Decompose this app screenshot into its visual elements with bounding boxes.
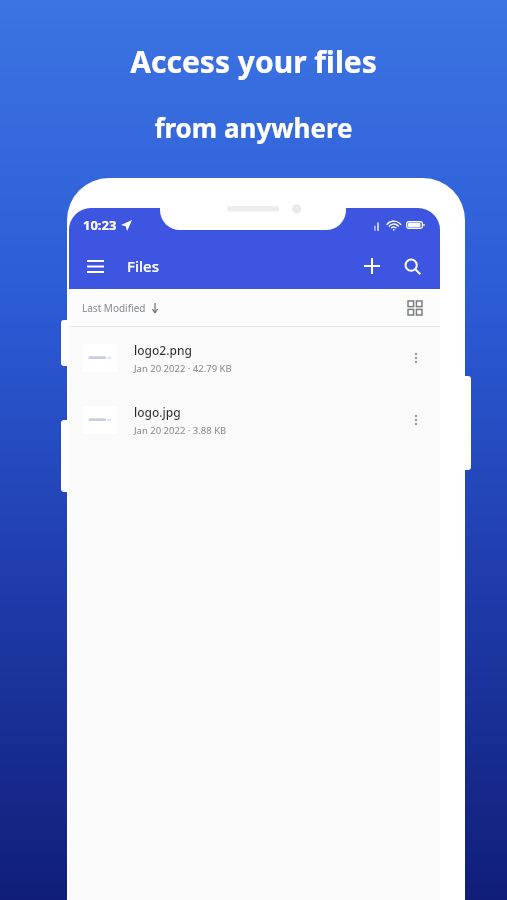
button[interactable]: More options bbox=[400, 342, 432, 374]
button[interactable]: logo2.png bbox=[69, 327, 440, 389]
button[interactable]: Search bbox=[392, 246, 432, 286]
button[interactable]: Menu bbox=[77, 248, 113, 284]
staticText: Files bbox=[127, 256, 159, 276]
button[interactable]: Grid view bbox=[400, 293, 430, 323]
staticText: Jan 20 2022 · 3.88 KB bbox=[134, 424, 227, 437]
staticText: from anywhere bbox=[0, 110, 507, 145]
staticText: 10:23 bbox=[83, 216, 117, 234]
staticText: Jan 20 2022 · 42.79 KB bbox=[134, 362, 232, 375]
button[interactable]: Add bbox=[352, 246, 392, 286]
staticText: logo2.png bbox=[134, 342, 192, 358]
button[interactable]: More options bbox=[400, 404, 432, 436]
staticText: Last Modified bbox=[82, 301, 146, 315]
staticText: Access your files bbox=[0, 41, 507, 82]
button[interactable]: logo.jpg bbox=[69, 389, 440, 451]
staticText: logo.jpg bbox=[134, 404, 181, 420]
button[interactable]: Last Modified bbox=[69, 289, 440, 326]
